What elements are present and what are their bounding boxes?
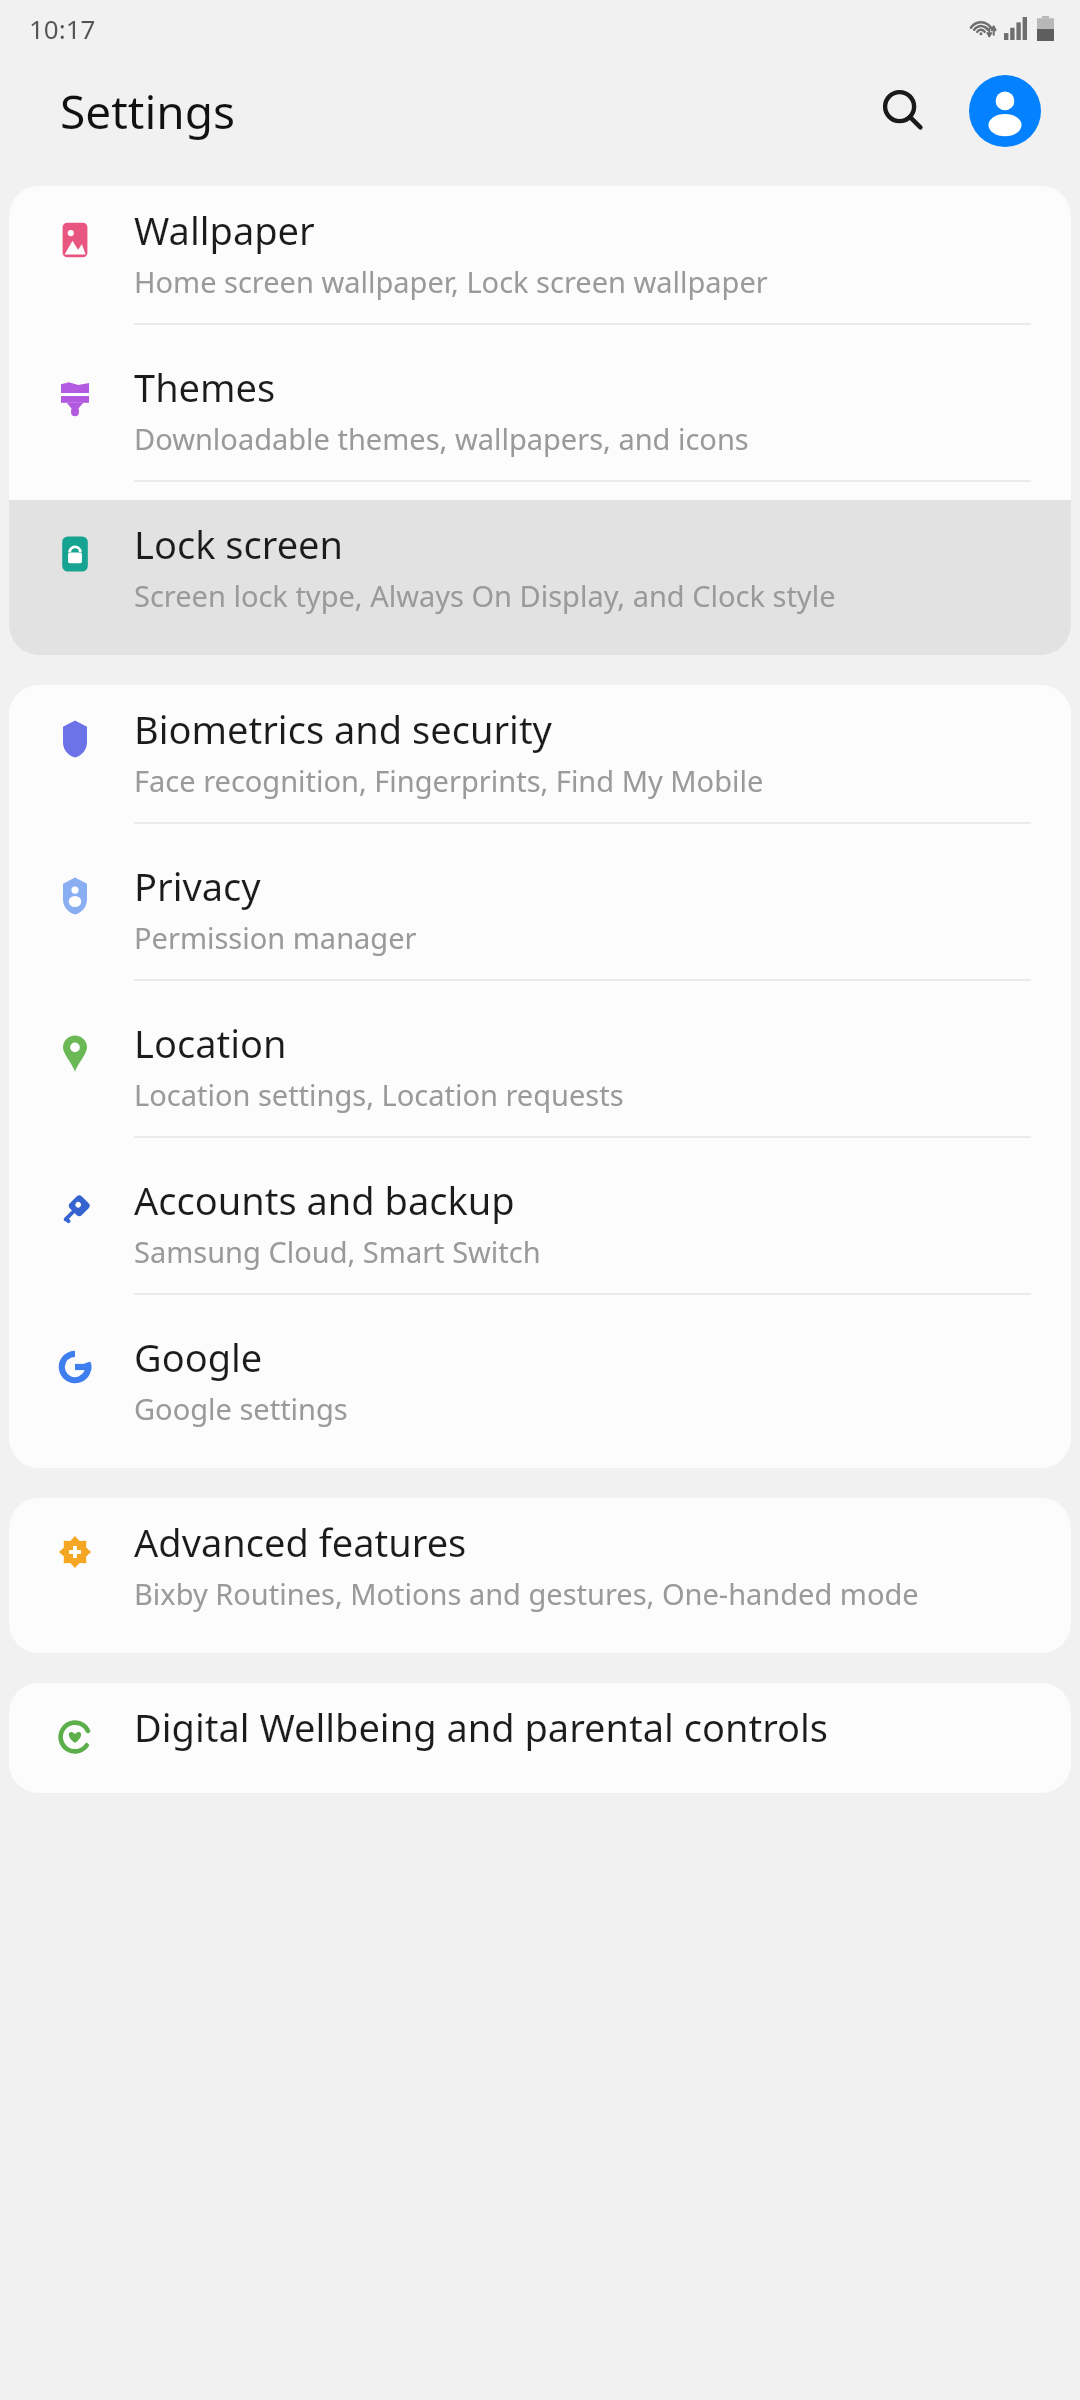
staticText: Face recognition, Fingerprints, Find My …: [134, 761, 764, 800]
staticText: Downloadable themes, wallpapers, and ico…: [134, 419, 749, 458]
button[interactable]: Google: [9, 1313, 1071, 1468]
button[interactable]: Location: [9, 999, 1071, 1156]
staticText: 10:17: [29, 11, 96, 46]
staticText: Lock screen: [134, 518, 344, 570]
staticText: Samsung Cloud, Smart Switch: [134, 1232, 541, 1271]
staticText: Permission manager: [134, 918, 417, 957]
button[interactable]: Themes: [9, 343, 1071, 500]
button[interactable]: Lock screen: [9, 500, 1071, 655]
button[interactable]: Accounts and backup: [9, 1156, 1071, 1313]
staticText: Bixby Routines, Motions and gestures, On…: [134, 1574, 919, 1613]
staticText: Accounts and backup: [134, 1174, 515, 1226]
button[interactable]: Wallpaper: [9, 186, 1071, 343]
staticText: Google settings: [134, 1389, 348, 1428]
button[interactable]: Privacy: [9, 842, 1071, 999]
button[interactable]: Digital Wellbeing and parental controls: [9, 1683, 1071, 1793]
staticText: Digital Wellbeing and parental controls: [134, 1701, 829, 1753]
button[interactable]: Advanced features: [9, 1498, 1071, 1653]
button[interactable]: Biometrics and security: [9, 685, 1071, 842]
staticText: Wallpaper: [134, 204, 315, 256]
staticText: Settings: [60, 80, 236, 143]
staticText: Screen lock type, Always On Display, and…: [134, 576, 836, 615]
button[interactable]: Account: [966, 72, 1044, 150]
staticText: Location: [134, 1017, 287, 1069]
staticText: Advanced features: [134, 1516, 467, 1568]
staticText: Biometrics and security: [134, 703, 553, 755]
staticText: Google: [134, 1331, 263, 1383]
staticText: Privacy: [134, 860, 261, 912]
staticText: Themes: [134, 361, 276, 413]
button[interactable]: Search: [864, 71, 944, 151]
staticText: Location settings, Location requests: [134, 1075, 624, 1114]
staticText: Home screen wallpaper, Lock screen wallp…: [134, 262, 768, 301]
